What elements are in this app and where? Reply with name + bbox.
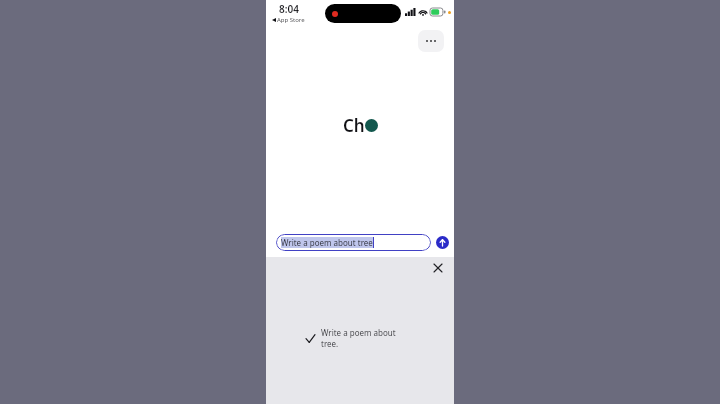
button[interactable]: Write a poem about tree. [306, 327, 414, 349]
staticText: Ch [343, 114, 365, 137]
button[interactable]: Write a poem about tree [276, 234, 431, 251]
staticText: App Store [277, 16, 305, 24]
staticText: 8:04 [279, 2, 299, 16]
staticText: Write a poem about tree. [321, 327, 414, 349]
staticText: Write a poem about tree [281, 237, 373, 248]
button[interactable]: Send [436, 236, 449, 249]
button[interactable]: More options [418, 30, 444, 52]
button[interactable]: Close [429, 259, 447, 277]
